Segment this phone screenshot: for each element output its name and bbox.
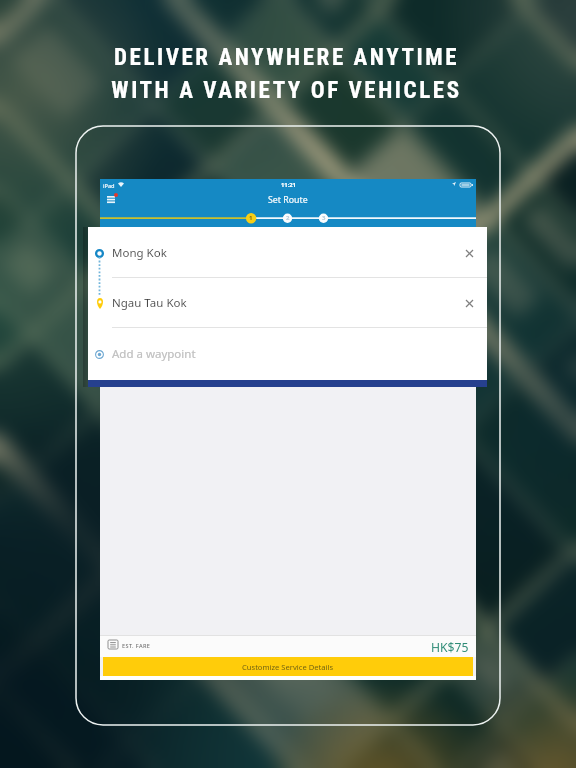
staticText: 3: [322, 214, 326, 222]
staticText: HK$75: [431, 639, 469, 656]
staticText: Mong Kok: [112, 245, 167, 261]
button[interactable]: Clear: [461, 295, 477, 311]
staticText: Customize Service Details: [242, 662, 334, 672]
staticText: 11:21: [281, 181, 296, 189]
button[interactable]: Mong Kok: [88, 227, 487, 278]
button[interactable]: Add a waypoint: [88, 328, 487, 380]
button[interactable]: Clear: [461, 245, 477, 261]
staticText: 2: [286, 214, 290, 222]
staticText: 1: [249, 214, 253, 222]
button[interactable]: Customize Service Details: [103, 657, 473, 676]
button[interactable]: Ngau Tau Kok: [88, 278, 487, 328]
staticText: Ngau Tau Kok: [112, 295, 187, 311]
staticText: Add a waypoint: [112, 346, 196, 362]
staticText: DELIVER ANYWHERE ANYTIME WITH A VARIETY …: [111, 44, 462, 103]
staticText: iPad: [103, 182, 115, 190]
staticText: EST. FARE: [122, 642, 151, 650]
staticText: Set Route: [268, 194, 308, 206]
button[interactable]: Menu: [103, 192, 121, 206]
